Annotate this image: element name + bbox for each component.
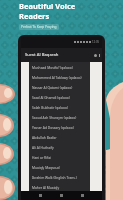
staticText: Mushaad Mostfa? (qalaoo) bbox=[32, 65, 73, 69]
staticText: Hani ar Rifai bbox=[32, 155, 51, 159]
button[interactable]: Ali Al Huthaify bbox=[29, 142, 90, 152]
staticText: Beautiful Voice bbox=[19, 1, 76, 11]
button[interactable]: Hani ar Rifai bbox=[29, 152, 90, 162]
button[interactable]: Mohammed Al Tablawy (qalaoo) bbox=[29, 72, 90, 82]
staticText: Perfect To Keep Praying bbox=[21, 25, 57, 29]
button[interactable]: Maher Al Muaiqly bbox=[29, 182, 90, 191]
staticText: 12:05 bbox=[92, 40, 100, 44]
staticText: Salah Bukhatir (qalaoo) bbox=[32, 105, 68, 109]
button[interactable]: Yasser Ad Dossary (qalaoo) bbox=[29, 122, 90, 132]
button[interactable]: Salah Bukhatir (qalaoo) bbox=[29, 102, 90, 112]
button[interactable]: Saoud Ash Shuraym (qalaoo) bbox=[29, 112, 90, 122]
button[interactable]: Nassar Al Qatami (qalaoo) bbox=[29, 82, 90, 92]
staticText: Saad Al Ghamdi (qalaoo) bbox=[32, 95, 70, 99]
button[interactable]: Muaiqly Maqsoud bbox=[29, 162, 90, 172]
staticText: Muaiqly Maqsoud bbox=[32, 165, 60, 169]
staticText: Nassar Al Qatami (qalaoo) bbox=[32, 85, 73, 89]
button[interactable]: Ibrahim Walk (English Trans.) bbox=[29, 172, 90, 182]
staticText: Abdullah Basfar bbox=[32, 135, 57, 139]
staticText: Surat Al Baqarah bbox=[25, 52, 59, 58]
button[interactable]: Mushaad Mostfa? (qalaoo) bbox=[29, 62, 90, 72]
staticText: Ibrahim Walk (English Trans.) bbox=[32, 175, 77, 179]
button[interactable]: Abdullah Basfar bbox=[29, 132, 90, 142]
staticText: Yasser Ad Dossary (qalaoo) bbox=[32, 125, 74, 129]
staticText: Ali Al Huthaify bbox=[32, 145, 54, 149]
staticText: Maher Al Muaiqly bbox=[32, 185, 60, 189]
staticText: Mohammed Al Tablawy (qalaoo) bbox=[32, 75, 82, 79]
staticText: Saoud Ash Shuraym (qalaoo) bbox=[32, 115, 77, 119]
button[interactable]: Saad Al Ghamdi (qalaoo) bbox=[29, 92, 90, 102]
staticText: Readers bbox=[19, 11, 50, 21]
